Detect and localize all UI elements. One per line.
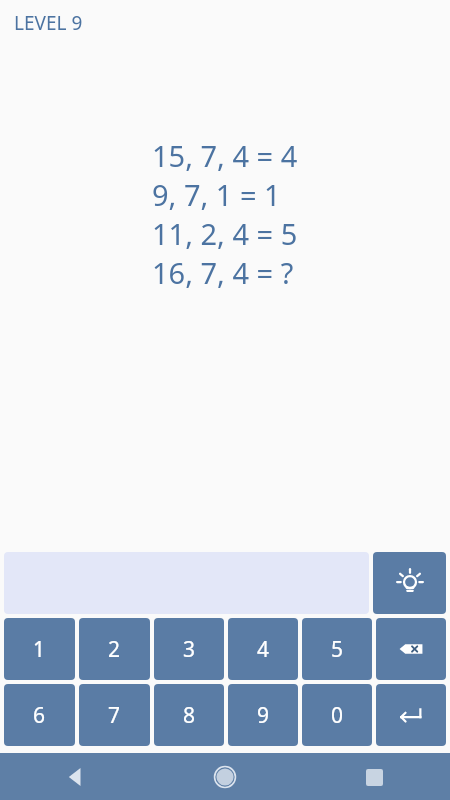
staticText: LEVEL 9 xyxy=(14,10,83,36)
staticText: 9 xyxy=(257,701,270,730)
button[interactable]: Home xyxy=(205,757,245,797)
staticText: 2 xyxy=(108,635,121,664)
button[interactable]: 9 xyxy=(228,684,298,746)
button[interactable]: 1 xyxy=(4,618,75,680)
button[interactable]: 4 xyxy=(228,618,298,680)
button[interactable]: 3 xyxy=(154,618,224,680)
staticText: 8 xyxy=(183,701,196,730)
staticText: 5 xyxy=(331,635,344,664)
staticText: 7 xyxy=(108,701,121,730)
staticText: 4 xyxy=(257,635,270,664)
button[interactable]: 5 xyxy=(302,618,372,680)
staticText: 15, 7, 4 = 4 xyxy=(152,136,298,175)
button[interactable]: Enter xyxy=(376,684,446,746)
staticText: 0 xyxy=(331,701,344,730)
button[interactable]: LEVEL 9 xyxy=(14,10,83,36)
button[interactable]: 6 xyxy=(4,684,75,746)
staticText: 16, 7, 4 = ? xyxy=(152,253,294,292)
staticText: 1 xyxy=(33,635,46,664)
button[interactable]: Hint xyxy=(373,552,446,614)
button[interactable]: 8 xyxy=(154,684,224,746)
staticText: 9, 7, 1 = 1 xyxy=(152,175,281,214)
button[interactable]: 0 xyxy=(302,684,372,746)
button[interactable]: 2 xyxy=(79,618,150,680)
staticText: 11, 2, 4 = 5 xyxy=(152,214,298,253)
button[interactable]: Recents xyxy=(354,757,394,797)
button[interactable]: 7 xyxy=(79,684,150,746)
button[interactable]: Back xyxy=(56,757,96,797)
staticText: 3 xyxy=(183,635,196,664)
staticText: 6 xyxy=(33,701,46,730)
button[interactable]: Backspace xyxy=(376,618,446,680)
